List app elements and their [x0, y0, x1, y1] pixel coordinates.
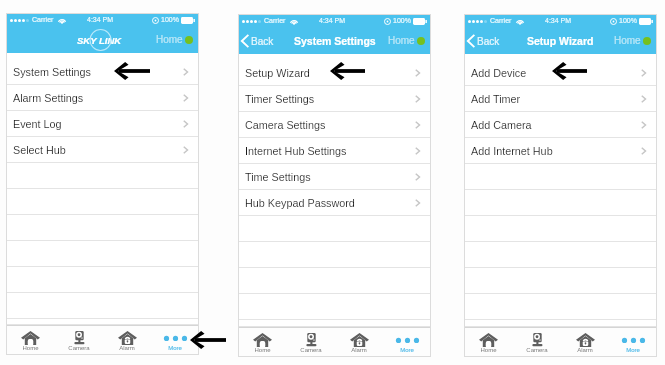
staticText: Add Timer [471, 93, 521, 105]
staticText: Add Internet Hub [471, 145, 553, 157]
button[interactable]: Select Hub [6, 137, 199, 163]
staticText: Camera Settings [245, 119, 326, 131]
staticText: Setup Wizard [527, 35, 594, 47]
staticText: Carrier [264, 17, 286, 25]
staticText: 100% [161, 16, 179, 24]
staticText: More [400, 347, 414, 354]
button[interactable]: Internet Hub Settings [238, 138, 431, 164]
button[interactable]: Add Timer [464, 86, 657, 112]
button[interactable]: System Settings [6, 59, 199, 85]
staticText: Camera [526, 347, 548, 354]
button[interactable]: Add Internet Hub [464, 138, 657, 164]
staticText: Back [477, 36, 500, 47]
button[interactable]: Alarm [335, 328, 383, 357]
button[interactable]: Setup Wizard [238, 60, 431, 86]
staticText: Camera [300, 347, 322, 354]
button[interactable]: Camera [513, 328, 561, 357]
button[interactable]: Timer Settings [238, 86, 431, 112]
staticText: Add Device [471, 67, 527, 79]
button[interactable]: Home [388, 35, 425, 46]
staticText: Event Log [13, 118, 62, 130]
staticText: Time Settings [245, 171, 311, 183]
staticText: Back [251, 36, 274, 47]
staticText: Home [614, 35, 641, 46]
staticText: Timer Settings [245, 93, 315, 105]
staticText: Home [254, 347, 271, 354]
staticText: Select Hub [13, 144, 66, 156]
staticText: Alarm Settings [13, 92, 84, 104]
button[interactable]: Home [238, 328, 287, 357]
staticText: 4:34 PM [319, 17, 346, 25]
staticText: Alarm [119, 345, 135, 352]
button[interactable]: More [151, 326, 199, 355]
staticText: Carrier [490, 17, 512, 25]
button[interactable]: Time Settings [238, 164, 431, 190]
staticText: Internet Hub Settings [245, 145, 347, 157]
staticText: 4:34 PM [545, 17, 572, 25]
staticText: SKY LINK [77, 35, 122, 46]
staticText: Home [156, 34, 183, 45]
button[interactable]: Home [156, 34, 193, 45]
button[interactable]: Alarm [103, 326, 151, 355]
staticText: Camera [68, 345, 90, 352]
staticText: More [626, 347, 640, 354]
button[interactable]: Hub Keypad Password [238, 190, 431, 216]
staticText: Alarm [351, 347, 367, 354]
staticText: Setup Wizard [245, 67, 310, 79]
button[interactable]: Camera [55, 326, 103, 355]
button[interactable]: Camera [287, 328, 335, 357]
staticText: Add Camera [471, 119, 532, 131]
button[interactable]: More [383, 328, 431, 357]
staticText: Carrier [32, 16, 54, 24]
staticText: System Settings [13, 66, 92, 78]
staticText: Alarm [577, 347, 593, 354]
staticText: 100% [393, 17, 411, 25]
button[interactable]: Home [464, 328, 513, 357]
button[interactable]: Add Camera [464, 112, 657, 138]
button[interactable]: Alarm [561, 328, 609, 357]
staticText: 100% [619, 17, 637, 25]
button[interactable]: More [609, 328, 657, 357]
staticText: Hub Keypad Password [245, 197, 355, 209]
staticText: More [168, 345, 182, 352]
button[interactable]: Event Log [6, 111, 199, 137]
button[interactable]: Home [614, 35, 651, 46]
staticText: System Settings [294, 35, 376, 47]
button[interactable]: Back [467, 34, 500, 48]
staticText: 4:34 PM [87, 16, 114, 24]
button[interactable]: Alarm Settings [6, 85, 199, 111]
staticText: Home [388, 35, 415, 46]
button[interactable]: Back [241, 34, 274, 48]
button[interactable]: Camera Settings [238, 112, 431, 138]
button[interactable]: Add Device [464, 60, 657, 86]
staticText: Home [480, 347, 497, 354]
staticText: Home [22, 345, 39, 352]
button[interactable]: Home [6, 326, 55, 355]
